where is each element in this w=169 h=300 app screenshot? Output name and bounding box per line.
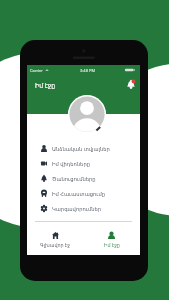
button[interactable]: Իմ վիդեոները bbox=[27, 156, 140, 171]
button[interactable]: Կարգավորումներ bbox=[27, 201, 140, 216]
button[interactable]: Իմ էջը bbox=[83, 222, 140, 250]
button[interactable]: Ծանուցումները bbox=[27, 171, 140, 186]
staticText: 3:48 PM bbox=[80, 68, 96, 73]
button[interactable]: Իմ էջը bbox=[33, 79, 58, 91]
staticText: Իմ վիդեոները bbox=[52, 160, 90, 167]
staticText: Իմ էջը bbox=[35, 81, 56, 89]
button[interactable]: Գլխավոր էջ bbox=[27, 222, 83, 250]
staticText: Carrier bbox=[30, 68, 44, 73]
button[interactable]: Անձնական տվյալներ bbox=[27, 141, 140, 156]
staticText: Կարգավորումներ bbox=[52, 206, 102, 212]
button[interactable]: Notifications bbox=[124, 78, 137, 91]
staticText: Գլխավոր էջ bbox=[40, 242, 70, 249]
staticText: Իմ էջը bbox=[104, 242, 120, 249]
staticText: Ծանուցումները bbox=[52, 176, 96, 182]
staticText: Իմ Հաւաստացումը bbox=[52, 190, 106, 197]
button[interactable]: Իմ Հաւաստացումը bbox=[27, 186, 140, 201]
staticText: Անձնական տվյալներ bbox=[52, 145, 110, 152]
